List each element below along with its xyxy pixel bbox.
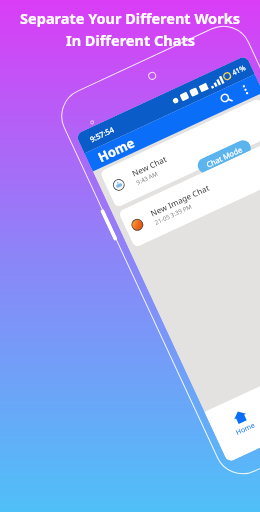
staticText: Home xyxy=(95,133,138,166)
button[interactable]: Search xyxy=(214,87,238,110)
staticText: In Different Chats xyxy=(66,30,195,50)
button[interactable]: New Chat xyxy=(99,98,260,208)
button[interactable]: New Image Chat xyxy=(118,138,260,248)
button[interactable]: Chat Mode xyxy=(195,138,253,176)
staticText: 41% xyxy=(230,63,247,78)
button[interactable]: Home xyxy=(219,401,260,444)
button[interactable]: More options xyxy=(235,79,256,100)
staticText: Home xyxy=(234,420,257,438)
staticText: 21-05 3:39 PM xyxy=(154,203,193,227)
staticText: 9:57:54 xyxy=(88,124,116,144)
staticText: 9:43 AM xyxy=(135,170,159,187)
staticText: New Chat xyxy=(130,153,168,179)
staticText: New Image Chat xyxy=(148,182,211,218)
staticText: Separate Your Different Works xyxy=(20,8,240,28)
staticText: Chat Mode xyxy=(204,144,244,170)
